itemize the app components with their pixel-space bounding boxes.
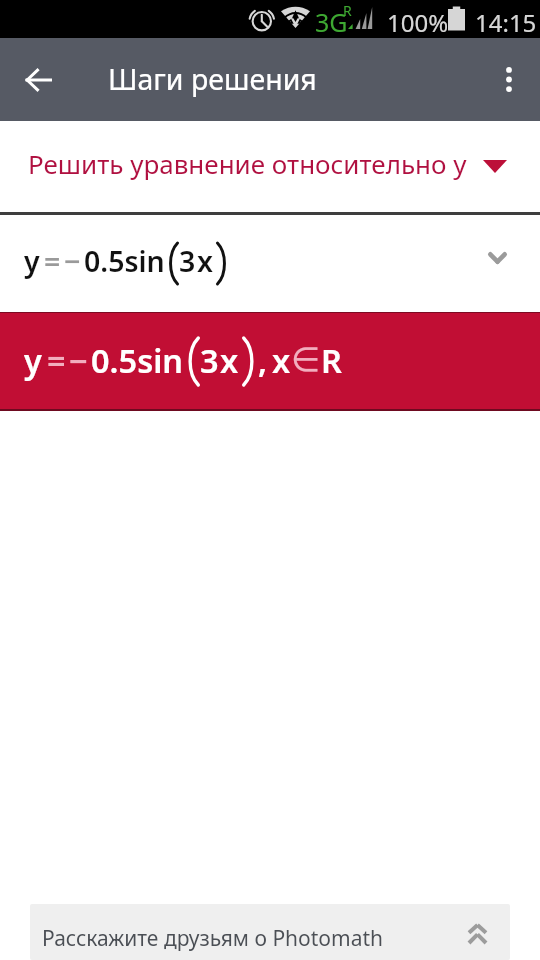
staticText: 0.5sin	[84, 242, 165, 281]
staticText: Решить уравнение относительно y	[28, 146, 467, 181]
button[interactable]: Back	[0, 38, 76, 121]
staticText: −	[69, 338, 88, 382]
staticText: 14:15	[475, 6, 537, 39]
staticText: −	[64, 242, 81, 281]
staticText: =	[44, 242, 61, 281]
button[interactable]: y	[0, 215, 540, 312]
staticText: Шаги решения	[108, 60, 317, 99]
staticText: 100%	[387, 6, 449, 39]
button[interactable]: More options	[478, 38, 540, 121]
staticText: R	[343, 1, 352, 20]
staticText: R	[321, 338, 342, 382]
button[interactable]: Решить уравнение относительно y	[0, 121, 540, 212]
staticText: 0.5sin	[91, 338, 184, 382]
staticText: ∈	[291, 340, 321, 379]
staticText: =	[47, 338, 66, 382]
staticText: 3G	[315, 5, 348, 39]
staticText: 3	[200, 338, 219, 382]
staticText: ,	[258, 338, 268, 382]
staticText: 3	[179, 242, 196, 281]
button[interactable]: y	[0, 312, 540, 411]
staticText: y	[24, 338, 42, 382]
staticText: Расскажите друзьям о Photomath	[42, 924, 384, 953]
staticText: x	[272, 338, 291, 382]
button[interactable]: Расскажите друзьям о Photomath	[30, 904, 510, 960]
staticText: y	[24, 242, 40, 281]
staticText: x	[220, 338, 239, 382]
staticText: x	[197, 242, 213, 281]
